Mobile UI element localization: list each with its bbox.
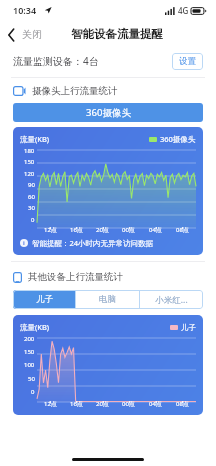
staticText: 00点 xyxy=(122,226,135,234)
button[interactable]: 电脑 xyxy=(76,290,139,309)
staticText: 150 xyxy=(24,348,35,356)
button[interactable]: 设置 xyxy=(172,53,203,70)
staticText: 08点 xyxy=(176,226,189,234)
staticText: 360摄像头 xyxy=(160,134,196,144)
button[interactable]: 其他设备上行流量统计 xyxy=(0,269,216,285)
staticText: 4G xyxy=(178,5,189,16)
button[interactable]: 小米红... xyxy=(140,290,203,309)
staticText: 16点 xyxy=(70,226,83,234)
button[interactable]: 360摄像头 xyxy=(13,103,203,122)
staticText: 智能设备流量提醒 xyxy=(71,27,163,41)
staticText: 00点 xyxy=(122,400,135,408)
staticText: 12点 xyxy=(44,400,57,408)
staticText: 180 xyxy=(24,147,35,155)
staticText: 其他设备上行流量统计 xyxy=(28,271,123,283)
staticText: 90 xyxy=(28,181,35,189)
staticText: 08点 xyxy=(176,400,189,408)
button[interactable]: 关闭 xyxy=(0,24,48,45)
staticText: 20点 xyxy=(96,400,109,408)
staticText: 流量(KB) xyxy=(20,322,50,332)
staticText: 电脑 xyxy=(99,294,116,305)
staticText: 10:34 xyxy=(13,4,37,16)
staticText: 小米红... xyxy=(155,294,188,306)
staticText: 0 xyxy=(31,216,35,224)
staticText: 关闭 xyxy=(22,28,42,41)
staticText: 04点 xyxy=(149,400,162,408)
staticText: 0 xyxy=(31,388,35,396)
staticText: 12点 xyxy=(44,226,57,234)
staticText: 50 xyxy=(28,375,35,383)
button[interactable]: 儿子 xyxy=(13,290,75,309)
staticText: i xyxy=(23,239,25,247)
staticText: 儿子 xyxy=(36,294,53,305)
staticText: 16点 xyxy=(70,400,83,408)
staticText: 设置 xyxy=(179,56,196,67)
staticText: 150 xyxy=(24,158,35,166)
staticText: 流量监测设备：4台 xyxy=(13,54,99,68)
staticText: 30 xyxy=(28,204,35,212)
staticText: 100 xyxy=(24,361,35,369)
staticText: 流量(KB) xyxy=(20,134,50,144)
staticText: 360摄像头 xyxy=(86,106,131,119)
staticText: 儿子 xyxy=(181,323,196,332)
staticText: 摄像头上行流量统计 xyxy=(32,85,118,97)
button[interactable]: 摄像头上行流量统计 xyxy=(0,83,216,99)
staticText: 04点 xyxy=(149,226,162,234)
staticText: 60 xyxy=(28,193,35,201)
staticText: 20点 xyxy=(96,226,109,234)
staticText: 120 xyxy=(24,170,35,178)
staticText: 200 xyxy=(24,335,35,343)
staticText: 智能提醒：24小时内无异常访问数据 xyxy=(32,238,154,248)
